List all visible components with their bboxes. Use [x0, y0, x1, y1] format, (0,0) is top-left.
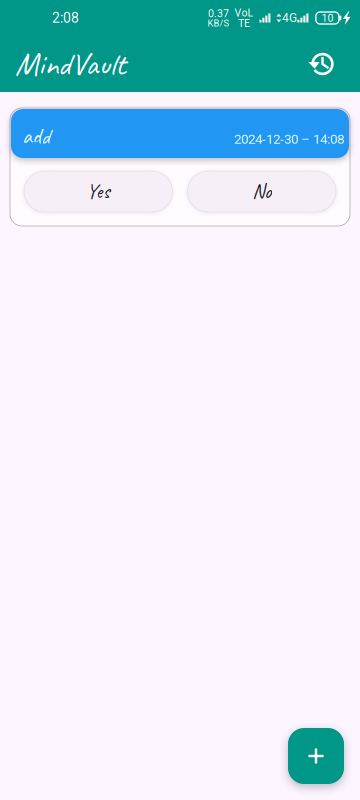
button[interactable]: Add entry — [288, 728, 344, 784]
staticText: KB/S — [207, 18, 229, 29]
button[interactable]: History — [297, 40, 345, 88]
button[interactable]: No — [187, 171, 336, 212]
staticText: 2024-12-30 – 14:08 — [234, 131, 344, 147]
staticText: 4G — [282, 11, 297, 25]
staticText: MindVault — [15, 44, 126, 84]
staticText: VoL — [234, 6, 253, 19]
staticText: add — [22, 122, 50, 151]
staticText: 0.37 — [208, 7, 229, 20]
staticText: Yes — [87, 179, 110, 204]
staticText: 2:08 — [52, 10, 79, 26]
button[interactable]: Yes — [24, 171, 172, 212]
staticText: No — [252, 179, 271, 204]
staticText: TE — [238, 17, 250, 29]
staticText: 10 — [321, 12, 333, 24]
